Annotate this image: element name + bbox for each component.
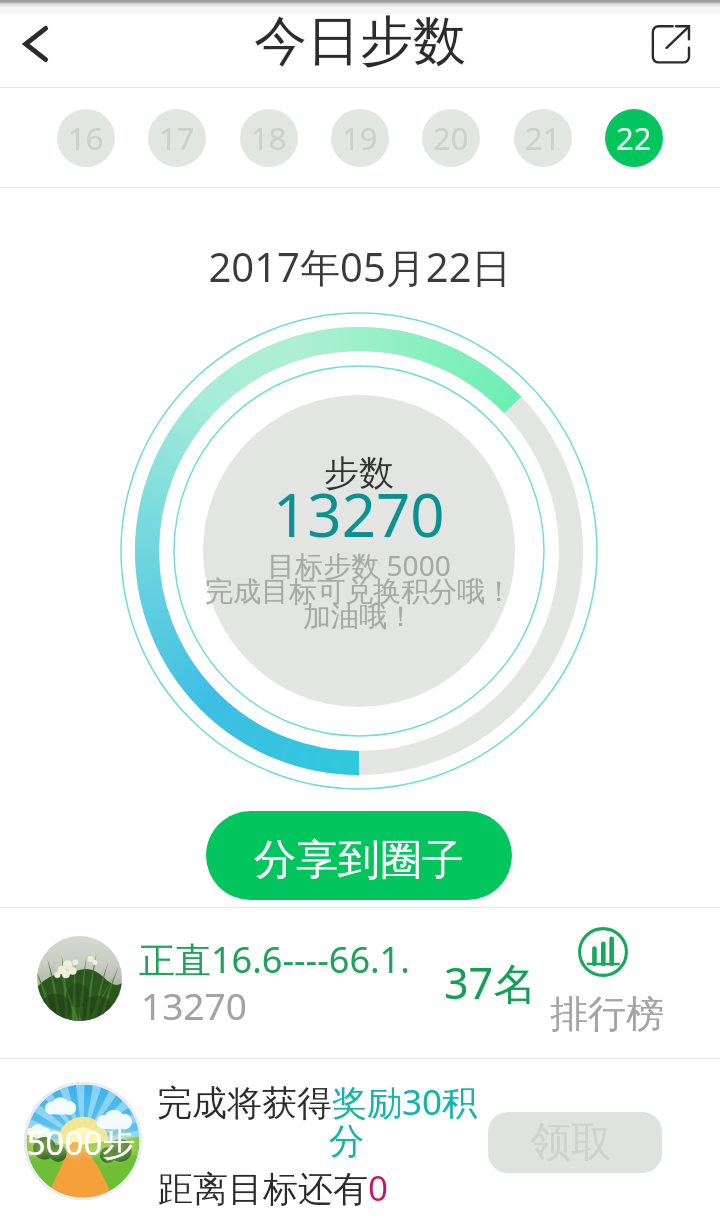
button[interactable]: Leaderboard [544, 916, 664, 1046]
button[interactable]: 20 [422, 109, 480, 167]
button[interactable]: 16 [57, 109, 115, 167]
button[interactable]: Back [0, 0, 72, 87]
button[interactable]: 17 [148, 109, 206, 167]
button[interactable]: 5000 steps badge [24, 1082, 142, 1200]
staticText: 13270 [141, 980, 247, 1030]
button[interactable]: Share [642, 0, 720, 87]
staticText: 37名 [444, 953, 537, 1012]
staticText: 正直16.6----66.1. [139, 935, 410, 984]
staticText: 5000步 [22, 1120, 140, 1165]
staticText: 步数 [324, 451, 394, 495]
staticText: 分享到圈子 [254, 834, 464, 887]
button[interactable]: 22 [605, 109, 663, 167]
staticText: 20 [433, 117, 469, 159]
button[interactable]: 19 [331, 109, 389, 167]
button[interactable]: 21 [514, 109, 572, 167]
staticText: 完成将获得奖励30积 [157, 1078, 478, 1126]
staticText: 19 [342, 117, 378, 159]
staticText: 目标步数 5000 完成目标可兑换积分哦！ 加油哦！ [205, 546, 513, 634]
button[interactable]: 分享到圈子 [206, 811, 512, 900]
staticText: 距离目标还有0 [158, 1164, 389, 1212]
staticText: 今日步数 [254, 8, 466, 75]
button[interactable]: 18 [240, 109, 298, 167]
staticText: 排行榜 [550, 990, 664, 1038]
staticText: 领取 [530, 1117, 612, 1169]
staticText: 18 [251, 117, 287, 159]
staticText: 21 [525, 117, 561, 159]
staticText: 22 [616, 117, 652, 159]
staticText: 分 [329, 1119, 364, 1163]
staticText: 16 [68, 117, 104, 159]
button[interactable]: 领取 [488, 1112, 662, 1173]
staticText: 17 [159, 117, 195, 159]
button[interactable]: 正直16.6----66.1. [0, 908, 720, 1058]
staticText: 13270 [273, 473, 445, 555]
staticText: 2017年05月22日 [0, 239, 720, 294]
